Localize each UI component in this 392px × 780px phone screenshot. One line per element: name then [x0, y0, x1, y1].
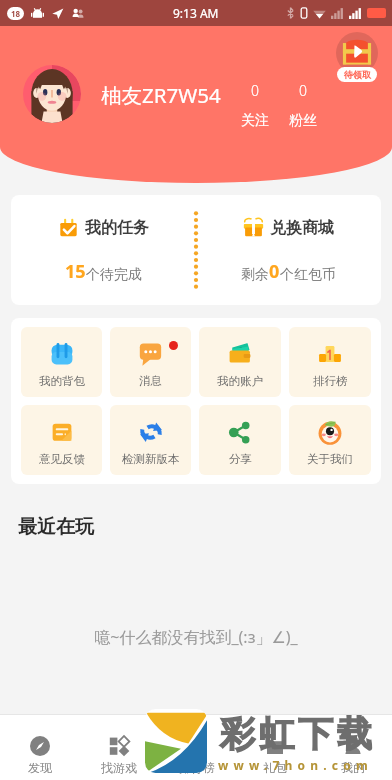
button[interactable]: 0: [280, 81, 326, 130]
staticText: 9:13 AM: [173, 5, 219, 21]
staticText: 彩虹下载: [218, 712, 374, 756]
staticText: 15: [65, 259, 86, 284]
staticText: 0: [269, 259, 280, 284]
staticText: 柚友ZR7W54: [101, 81, 221, 109]
staticText: 礼包: [263, 760, 287, 775]
staticText: 找游戏: [101, 760, 137, 775]
staticText: 我的: [341, 760, 365, 775]
staticText: 兑换商城: [270, 218, 334, 238]
button[interactable]: 关于我们: [289, 405, 371, 475]
staticText: 排行榜: [179, 760, 215, 775]
staticText: 检测新版本: [122, 452, 180, 466]
staticText: 个待完成: [86, 266, 142, 284]
staticText: 剩余: [241, 266, 269, 284]
button[interactable]: 待领取礼包: [331, 32, 383, 82]
button[interactable]: 分享: [199, 405, 281, 475]
button[interactable]: 礼包: [236, 715, 314, 780]
staticText: 0: [251, 81, 259, 100]
staticText: 0: [299, 81, 307, 100]
staticText: 我的背包: [39, 374, 85, 388]
staticText: 粉丝: [289, 112, 317, 130]
button[interactable]: 0: [232, 81, 278, 130]
button[interactable]: 找游戏: [79, 715, 158, 780]
staticText: 噫~什么都没有找到_(:з」∠)_: [0, 626, 392, 648]
button[interactable]: 消息: [110, 327, 191, 397]
button[interactable]: 检测新版本: [110, 405, 191, 475]
staticText: 意见反馈: [39, 452, 85, 466]
staticText: 18: [11, 8, 21, 19]
button[interactable]: 我的任务: [11, 195, 196, 305]
button[interactable]: 发现: [0, 715, 79, 780]
button[interactable]: 意见反馈: [21, 405, 102, 475]
staticText: www.7hon.com: [218, 757, 373, 773]
staticText: 消息: [139, 374, 162, 388]
staticText: 发现: [28, 760, 52, 775]
staticText: 关于我们: [307, 452, 353, 466]
staticText: 个红包币: [280, 266, 336, 284]
staticText: 最近在玩: [18, 515, 94, 539]
button[interactable]: 我的: [314, 715, 392, 780]
staticText: 排行榜: [313, 374, 348, 388]
button[interactable]: 我的账户: [199, 327, 281, 397]
staticText: 分享: [229, 452, 252, 466]
button[interactable]: 兑换商城: [196, 195, 381, 305]
button[interactable]: 排行榜: [158, 715, 236, 780]
button[interactable]: 排行榜: [289, 327, 371, 397]
staticText: 待领取: [344, 69, 371, 80]
button[interactable]: 我的背包: [21, 327, 102, 397]
staticText: 我的账户: [217, 374, 263, 388]
staticText: 我的任务: [85, 218, 149, 238]
staticText: 关注: [241, 112, 269, 130]
